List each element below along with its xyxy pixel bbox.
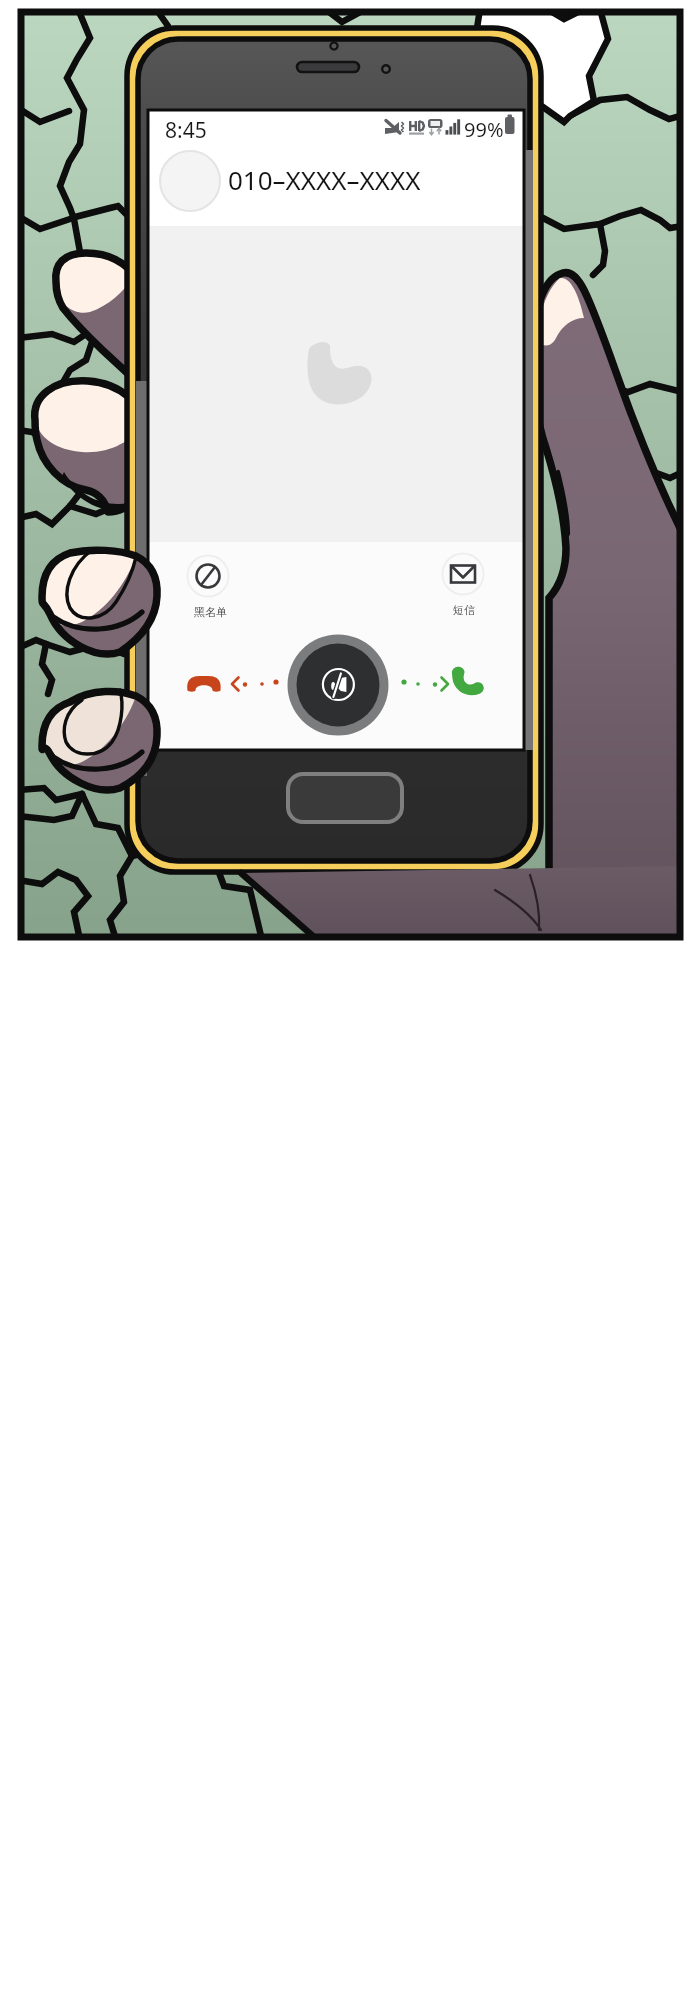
button[interactable]: Answer call (440, 656, 496, 708)
button[interactable] (437, 550, 491, 620)
button[interactable]: Decline call (180, 660, 236, 708)
staticText: 8:45 (165, 116, 207, 145)
button[interactable] (181, 552, 235, 622)
staticText: 010–XXXX–XXXX (228, 162, 421, 197)
staticText: 黑名单 (194, 605, 227, 619)
button[interactable]: Mute (288, 636, 388, 736)
staticText: 99% (464, 116, 504, 143)
staticText: 短信 (453, 603, 475, 617)
